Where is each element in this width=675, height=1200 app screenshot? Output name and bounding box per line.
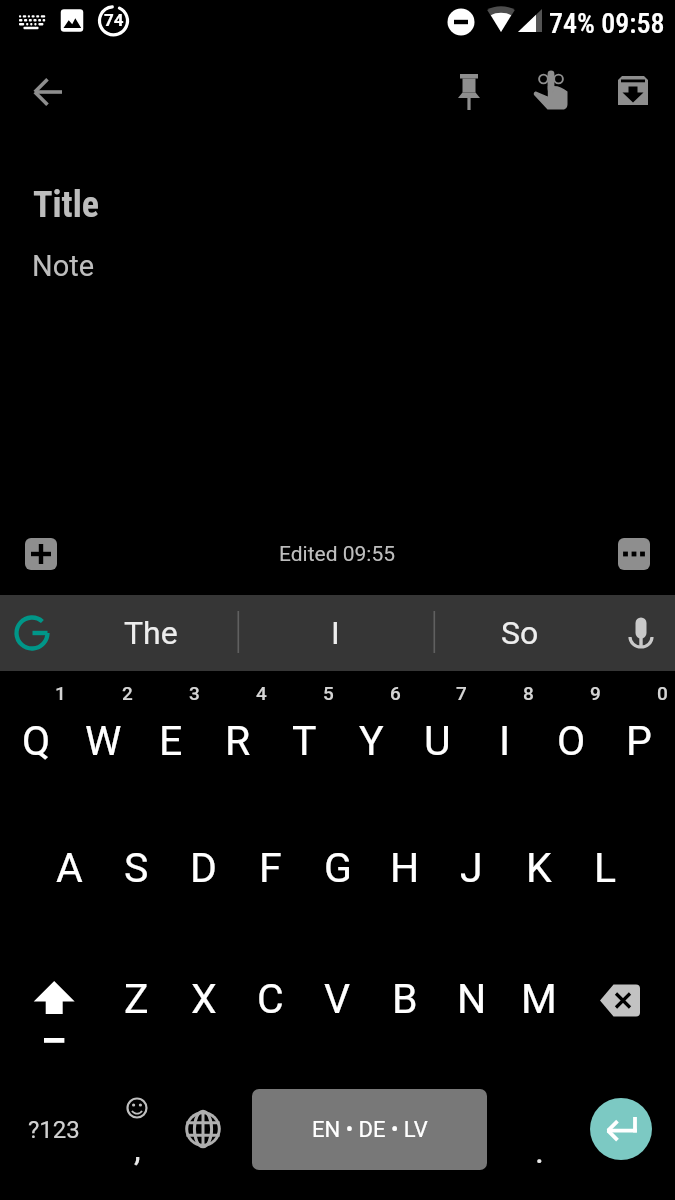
staticText: Y <box>359 717 384 765</box>
staticText: 3 <box>189 682 200 704</box>
staticText: So <box>501 614 539 652</box>
staticText: Edited 09:55 <box>279 542 396 567</box>
staticText: 74% 09:58 <box>549 7 665 40</box>
staticText: G <box>324 844 352 892</box>
staticText: 5 <box>323 682 334 704</box>
button[interactable]: 2 <box>70 671 137 802</box>
staticText: Q <box>22 717 51 765</box>
button[interactable]: The <box>66 595 236 671</box>
staticText: L <box>594 844 617 892</box>
button[interactable]: 3 <box>137 671 204 802</box>
button[interactable]: Google search <box>2 603 62 663</box>
staticText: 7 <box>456 682 467 704</box>
button[interactable]: A <box>36 802 103 933</box>
staticText: A <box>56 844 83 892</box>
button[interactable]: F <box>237 802 304 933</box>
button[interactable]: 0 <box>605 671 672 802</box>
staticText: P <box>626 717 652 765</box>
button[interactable]: Add <box>25 538 57 570</box>
button[interactable]: S <box>103 802 170 933</box>
staticText: 74 <box>104 10 124 30</box>
button[interactable]: 1 <box>3 671 70 802</box>
staticText: 8 <box>523 682 534 704</box>
button[interactable]: 7 <box>404 671 471 802</box>
button[interactable]: J <box>438 802 505 933</box>
staticText: . <box>535 1131 544 1171</box>
staticText: M <box>521 975 557 1023</box>
staticText: C <box>257 975 284 1023</box>
button[interactable]: Switch language <box>167 1064 238 1200</box>
staticText: The <box>124 614 178 652</box>
staticText: EN • DE • LV <box>312 1117 428 1143</box>
button[interactable]: Pin note <box>435 58 503 126</box>
button[interactable]: C <box>237 933 304 1064</box>
staticText: V <box>324 975 351 1023</box>
button[interactable]: Archive <box>599 58 667 126</box>
staticText: B <box>392 975 418 1023</box>
button[interactable]: Enter <box>573 1064 675 1200</box>
staticText: R <box>225 717 251 765</box>
button[interactable]: I <box>239 595 432 671</box>
staticText: T <box>292 717 317 765</box>
staticText: H <box>390 844 420 892</box>
button[interactable]: ?123 <box>0 1064 107 1200</box>
button[interactable]: 9 <box>538 671 605 802</box>
button[interactable]: , <box>107 1064 167 1200</box>
button[interactable]: 8 <box>471 671 538 802</box>
button[interactable]: H <box>371 802 438 933</box>
button[interactable]: 5 <box>271 671 338 802</box>
button[interactable]: L <box>572 802 639 933</box>
button[interactable]: B <box>371 933 438 1064</box>
button[interactable]: 4 <box>204 671 271 802</box>
button[interactable]: N <box>438 933 505 1064</box>
button[interactable]: Backspace <box>572 933 672 1064</box>
staticText: J <box>460 844 483 892</box>
staticText: 6 <box>390 682 401 704</box>
staticText: K <box>526 844 552 892</box>
button[interactable]: 6 <box>338 671 405 802</box>
staticText: 9 <box>590 682 601 704</box>
staticText: S <box>124 844 149 892</box>
staticText: 4 <box>256 682 267 704</box>
button[interactable]: Remind me <box>517 58 585 126</box>
staticText: 2 <box>122 682 133 704</box>
staticText: ?123 <box>28 1116 80 1144</box>
staticText: 0 <box>657 682 668 704</box>
button[interactable]: G <box>304 802 371 933</box>
staticText: I <box>331 614 340 652</box>
button[interactable]: K <box>505 802 572 933</box>
staticText: F <box>259 844 282 892</box>
button[interactable]: . <box>506 1064 573 1200</box>
staticText: 1 <box>55 682 66 704</box>
button[interactable]: M <box>505 933 572 1064</box>
staticText: Title <box>33 184 99 226</box>
button[interactable]: X <box>170 933 237 1064</box>
staticText: Z <box>124 975 149 1023</box>
staticText: E <box>159 717 183 765</box>
button[interactable]: Z <box>103 933 170 1064</box>
staticText: N <box>457 975 487 1023</box>
staticText: , <box>134 1129 141 1169</box>
staticText: O <box>557 717 586 765</box>
button[interactable]: Voice input <box>613 605 669 661</box>
staticText: U <box>424 717 451 765</box>
staticText: I <box>499 717 511 765</box>
button[interactable]: V <box>304 933 371 1064</box>
button[interactable]: So <box>436 595 603 671</box>
button[interactable]: Navigate up <box>20 64 76 120</box>
button[interactable]: Shift <box>3 933 103 1064</box>
button[interactable]: EN • DE • LV <box>252 1089 487 1170</box>
staticText: D <box>190 844 217 892</box>
staticText: W <box>85 717 122 765</box>
button[interactable]: D <box>170 802 237 933</box>
staticText: Note <box>32 249 95 283</box>
staticText: X <box>191 975 217 1023</box>
button[interactable]: More options <box>618 538 650 570</box>
